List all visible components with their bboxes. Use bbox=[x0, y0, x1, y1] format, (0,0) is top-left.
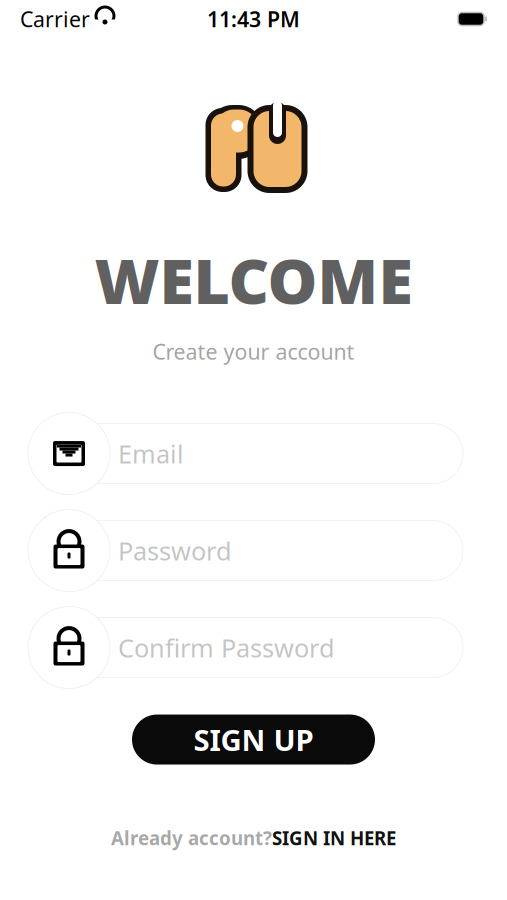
button[interactable]: Password bbox=[0, 509, 507, 591]
staticText: Carrier bbox=[20, 5, 90, 33]
staticText: Create your account bbox=[152, 337, 354, 365]
staticText: SIGN IN HERE bbox=[272, 825, 396, 850]
button[interactable]: SIGN UP bbox=[132, 714, 375, 764]
staticText: 11:43 PM bbox=[207, 5, 300, 33]
staticText: Confirm Password bbox=[118, 631, 335, 664]
staticText: WELCOME bbox=[94, 238, 412, 321]
button[interactable]: Confirm Password bbox=[0, 606, 507, 688]
staticText: Password bbox=[118, 534, 232, 567]
staticText: Already account? bbox=[111, 825, 272, 850]
button[interactable]: Already account? bbox=[111, 825, 396, 850]
staticText: SIGN UP bbox=[193, 720, 313, 759]
button[interactable]: Email bbox=[0, 412, 507, 494]
staticText: Email bbox=[118, 437, 184, 470]
